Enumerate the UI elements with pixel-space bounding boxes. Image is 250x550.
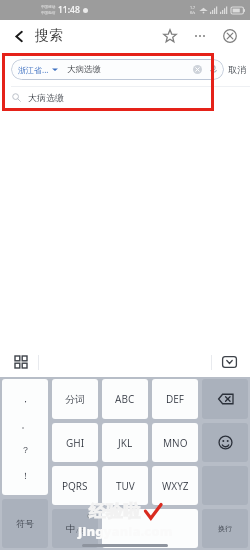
- staticText: jingyanla.com: [78, 522, 173, 540]
- button[interactable]: Backspace: [202, 379, 248, 419]
- staticText: 1.7: [190, 5, 196, 10]
- staticText: ？: [21, 444, 30, 455]
- staticText: 经验啦: [89, 501, 140, 522]
- button[interactable]: Hide keyboard: [218, 351, 240, 373]
- button[interactable]: 取消: [227, 64, 247, 75]
- staticText: 中国电信: [41, 11, 56, 16]
- button[interactable]: 分词: [52, 379, 98, 419]
- button[interactable]: 符号: [2, 499, 48, 548]
- staticText: 大病选缴: [28, 92, 64, 103]
- button[interactable]: 大病选缴: [0, 87, 250, 108]
- button[interactable]: JKL: [102, 423, 148, 462]
- button[interactable]: TUV: [102, 466, 148, 505]
- staticText: 取消: [228, 64, 246, 75]
- staticText: 。: [21, 419, 30, 430]
- button[interactable]: Voice search: [208, 64, 219, 75]
- button[interactable]: Keyboard panel: [10, 351, 32, 373]
- staticText: JKL: [118, 436, 133, 450]
- staticText: ，: [21, 393, 30, 404]
- staticText: 浙江省...: [18, 64, 49, 75]
- button[interactable]: Back: [8, 25, 30, 47]
- staticText: 11:48: [58, 4, 80, 16]
- button[interactable]: ABC: [102, 379, 148, 419]
- staticText: DEF: [166, 392, 185, 406]
- staticText: ABC: [115, 392, 135, 406]
- staticText: GHI: [66, 436, 85, 450]
- staticText: K/s: [190, 10, 196, 15]
- button[interactable]: 中: [52, 509, 98, 548]
- staticText: 中国移动: [41, 5, 56, 10]
- button[interactable]: PQRS: [52, 466, 98, 505]
- button[interactable]: MNO: [152, 423, 198, 462]
- button[interactable]: More options: [188, 24, 212, 48]
- button[interactable]: GHI: [52, 423, 98, 462]
- button[interactable]: Space: [102, 509, 198, 548]
- staticText: TUV: [116, 479, 135, 493]
- button[interactable]: WXYZ: [152, 466, 198, 505]
- staticText: PQRS: [62, 479, 88, 493]
- button[interactable]: DEF: [152, 379, 198, 419]
- button[interactable]: ，: [2, 379, 48, 495]
- staticText: 大病选缴: [67, 64, 101, 75]
- staticText: /英: [76, 527, 85, 535]
- staticText: WXYZ: [162, 479, 189, 493]
- button[interactable]: 浙江省...: [11, 59, 224, 80]
- button[interactable]: 换行: [202, 509, 248, 548]
- button[interactable]: Emoji: [202, 423, 248, 462]
- staticText: 中: [66, 523, 76, 535]
- button[interactable]: Favorite: [158, 24, 182, 48]
- staticText: 符号: [16, 518, 34, 529]
- staticText: ！: [21, 470, 30, 481]
- button[interactable]: Close: [218, 24, 242, 48]
- button[interactable]: Clear text: [192, 64, 203, 75]
- staticText: 搜索: [35, 27, 63, 45]
- staticText: 换行: [218, 524, 232, 533]
- staticText: 分词: [65, 393, 85, 406]
- staticText: MNO: [163, 436, 188, 450]
